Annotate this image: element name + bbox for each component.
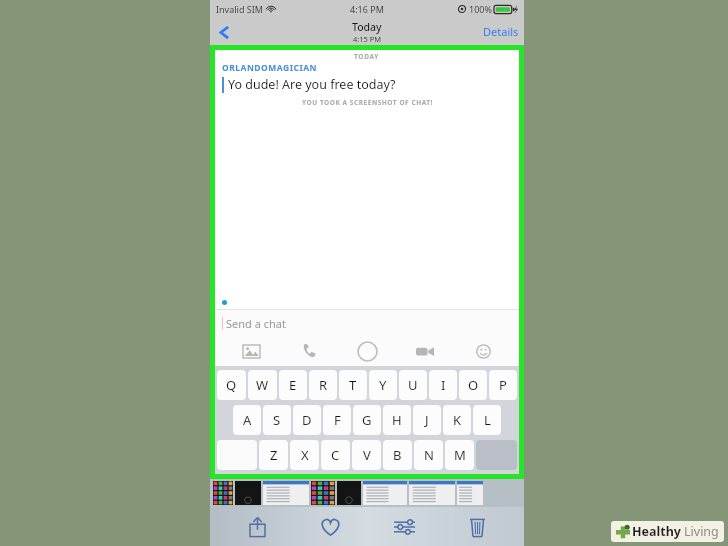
staticText: T	[349, 376, 357, 394]
staticText: M	[454, 446, 466, 464]
staticText: ORLANDOMAGICIAN	[222, 62, 318, 74]
button[interactable]	[363, 481, 407, 505]
button[interactable]: Q	[217, 370, 246, 400]
staticText: H	[392, 411, 402, 429]
button[interactable]: L	[473, 405, 501, 435]
button[interactable]: U	[399, 370, 427, 400]
button[interactable]: Healthy	[616, 523, 719, 540]
button[interactable]	[213, 481, 233, 505]
button[interactable]: H	[383, 405, 411, 435]
staticText: 100%	[469, 3, 492, 15]
button[interactable]: N	[414, 440, 443, 470]
staticText: Y	[379, 376, 387, 394]
button[interactable]	[337, 481, 361, 505]
button[interactable]	[457, 481, 483, 505]
staticText: K	[453, 411, 462, 429]
button[interactable]: V	[352, 440, 381, 470]
button[interactable]: C	[321, 440, 350, 470]
button[interactable]: G	[353, 405, 381, 435]
button[interactable]: M	[445, 440, 474, 470]
staticText: Living	[684, 523, 719, 540]
staticText: B	[393, 446, 402, 464]
staticText: Q	[226, 376, 237, 394]
staticText: A	[243, 411, 252, 429]
button[interactable]: F	[323, 405, 351, 435]
staticText: D	[302, 411, 312, 429]
button[interactable]: A	[233, 405, 261, 435]
button[interactable]: Details	[481, 21, 521, 42]
staticText: G	[362, 411, 372, 429]
button[interactable]: Adjust	[377, 508, 431, 546]
button[interactable]: O	[459, 370, 487, 400]
staticText: Healthy	[632, 523, 681, 540]
staticText: U	[408, 376, 418, 394]
staticText: L	[484, 411, 491, 429]
staticText: F	[334, 411, 341, 429]
button[interactable]: Video call	[403, 337, 447, 365]
staticText: Z	[270, 446, 278, 464]
button[interactable]: Capture	[345, 337, 389, 365]
staticText: Invalid SIM	[216, 3, 263, 15]
staticText: I	[441, 376, 446, 394]
staticText: 4:16 PM	[350, 3, 384, 15]
staticText: YOU TOOK A SCREENSHOT OF CHAT!	[302, 98, 433, 107]
button[interactable]: W	[248, 370, 277, 400]
button[interactable]: T	[339, 370, 367, 400]
staticText: O	[468, 376, 479, 394]
staticText: W	[256, 376, 269, 394]
button[interactable]	[263, 481, 309, 505]
staticText: V	[363, 446, 371, 464]
staticText: Send a chat	[226, 316, 286, 331]
button[interactable]	[409, 481, 455, 505]
staticText: 4:15 PM	[353, 34, 382, 44]
button[interactable]: Delete	[450, 508, 504, 546]
button[interactable]: B	[383, 440, 412, 470]
button[interactable]: Send a chat	[215, 310, 519, 336]
button[interactable]: E	[279, 370, 307, 400]
staticText: R	[319, 376, 328, 394]
staticText: TODAY	[354, 52, 380, 61]
staticText: P	[499, 376, 507, 394]
button[interactable]: Photos	[229, 337, 273, 365]
button[interactable]: Z	[259, 440, 288, 470]
button[interactable]: Favorite	[303, 508, 357, 546]
button[interactable]: S	[263, 405, 291, 435]
button[interactable]: Y	[369, 370, 397, 400]
button[interactable]: J	[413, 405, 441, 435]
button[interactable]: I	[429, 370, 457, 400]
staticText: Today	[352, 20, 382, 34]
button[interactable]: Call	[287, 337, 331, 365]
staticText: Yo dude! Are you free today?	[228, 76, 396, 93]
staticText: J	[425, 411, 429, 429]
button[interactable]: Shift	[217, 440, 257, 470]
button[interactable]: K	[443, 405, 471, 435]
staticText: E	[289, 376, 297, 394]
button[interactable]: P	[489, 370, 517, 400]
staticText: S	[273, 411, 281, 429]
staticText: N	[424, 446, 434, 464]
button[interactable]: Back	[213, 21, 235, 43]
staticText: X	[301, 446, 309, 464]
button[interactable]: R	[309, 370, 337, 400]
staticText: C	[331, 446, 340, 464]
staticText: Details	[483, 24, 519, 39]
button[interactable]	[311, 481, 335, 505]
button[interactable]: D	[293, 405, 321, 435]
button[interactable]: Stickers	[461, 337, 505, 365]
button[interactable]: Share	[230, 508, 284, 546]
button[interactable]: X	[290, 440, 319, 470]
button[interactable]	[235, 481, 261, 505]
